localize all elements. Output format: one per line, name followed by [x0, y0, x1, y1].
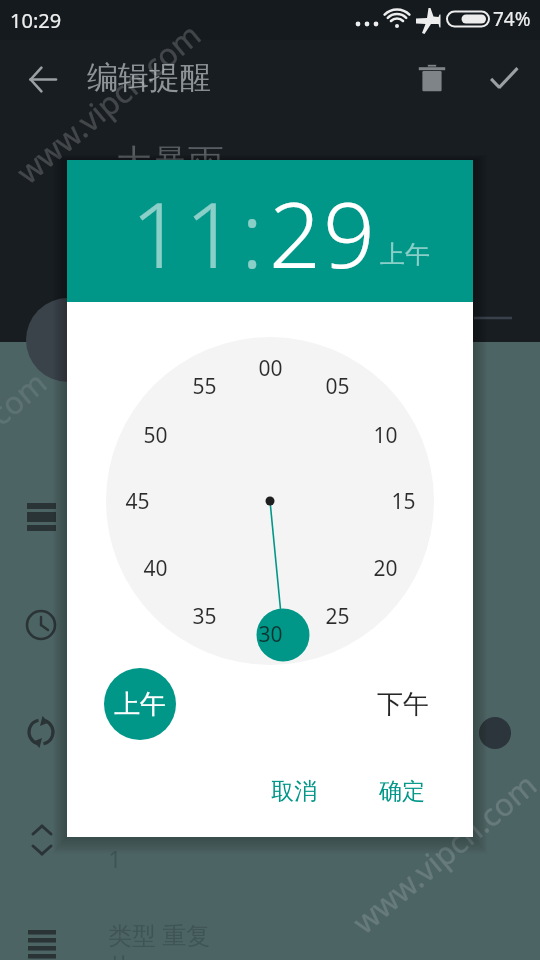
staticText: www.vipcn.com — [0, 362, 55, 540]
staticText: 74% — [493, 6, 531, 32]
staticText: 取消 — [271, 777, 317, 806]
staticText: 从 — [108, 952, 132, 960]
staticText: 15 — [391, 487, 416, 516]
staticText: 35 — [192, 602, 217, 631]
staticText: 20 — [373, 554, 398, 583]
button[interactable]: 下午 — [367, 668, 439, 740]
staticText: 25 — [325, 602, 350, 631]
staticText: 上午 — [114, 688, 166, 721]
staticText: 00 — [258, 354, 283, 383]
staticText: 30 — [258, 620, 283, 649]
staticText: 1 — [108, 842, 122, 875]
staticText: 大暴雨 — [116, 140, 224, 185]
staticText: www.vipcn.com — [343, 764, 540, 942]
staticText: 10:29 — [10, 7, 62, 34]
button[interactable]: Delete — [406, 52, 458, 104]
staticText: 45 — [125, 487, 150, 516]
button[interactable]: Back — [16, 53, 68, 105]
staticText: www.vipcn.com — [7, 14, 209, 192]
staticText: 50 — [143, 421, 168, 450]
staticText: 确定 — [379, 777, 425, 806]
staticText: 下午 — [377, 688, 429, 721]
staticText: 05 — [325, 372, 350, 401]
staticText: 40 — [143, 554, 168, 583]
button[interactable]: 取消 — [254, 767, 334, 815]
staticText: 10 — [373, 421, 398, 450]
staticText: 编辑提醒 — [87, 58, 211, 97]
staticText: 29 — [269, 171, 377, 295]
button[interactable]: 上午 — [104, 668, 176, 740]
staticText: 类型 重复 — [108, 918, 211, 951]
staticText: 11 — [131, 171, 239, 295]
staticText: 上午 — [380, 239, 430, 270]
button[interactable]: 上午 — [380, 239, 430, 270]
button[interactable]: Confirm — [478, 52, 530, 104]
staticText: 55 — [192, 372, 217, 401]
staticText: : — [241, 171, 266, 295]
button[interactable]: 确定 — [362, 767, 442, 815]
